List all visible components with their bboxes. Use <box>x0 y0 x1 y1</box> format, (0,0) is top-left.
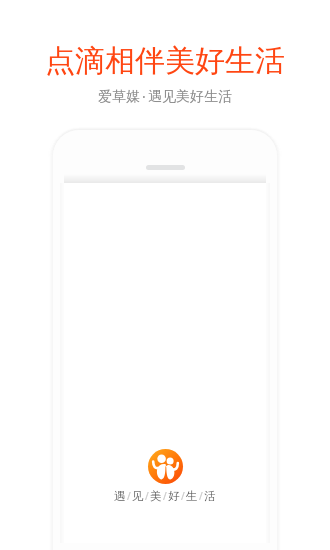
staticText: / <box>181 489 185 503</box>
staticText: 见 <box>132 489 144 503</box>
staticText: 点滴相伴美好生活 <box>45 42 285 80</box>
staticText: 爱草媒 <box>98 88 140 106</box>
staticText: 活 <box>204 489 216 503</box>
staticText: 生 <box>186 489 198 503</box>
staticText: 遇 <box>114 489 126 503</box>
staticText: 好 <box>168 489 180 503</box>
staticText: / <box>127 489 131 503</box>
staticText: / <box>163 489 167 503</box>
staticText: 遇见美好生活 <box>148 88 232 106</box>
other: 爱草媒 logo <box>148 449 183 484</box>
staticText: · <box>142 87 146 106</box>
staticText: / <box>145 489 149 503</box>
button[interactable]: 爱草媒 logo <box>64 443 266 509</box>
staticText: / <box>199 489 203 503</box>
staticText: 美 <box>150 489 162 503</box>
